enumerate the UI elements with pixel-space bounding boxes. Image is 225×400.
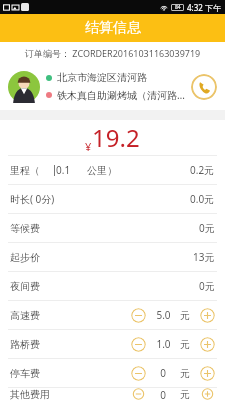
staticText: 结算信息 <box>85 19 141 37</box>
staticText: 0 <box>160 366 166 380</box>
button[interactable]: 起步价 <box>0 243 225 271</box>
staticText: 里程（ <box>10 164 40 177</box>
staticText: 公里） <box>87 164 117 177</box>
button[interactable]: Increase <box>200 308 215 323</box>
staticText: 北京市海淀区清河路 <box>57 71 147 84</box>
staticText: 0.1 <box>56 163 71 177</box>
staticText: 0.0元 <box>190 192 215 206</box>
staticText: 13元 <box>193 250 215 264</box>
button[interactable]: Decrease <box>131 388 146 400</box>
staticText: 其他费用 <box>10 388 50 400</box>
staticText: 高速费 <box>10 309 40 322</box>
staticText: 元 <box>180 309 190 322</box>
button[interactable]: Increase <box>200 366 215 381</box>
button[interactable]: Increase <box>200 388 215 400</box>
staticText: 停车费 <box>10 367 40 380</box>
staticText: 0元 <box>199 221 215 235</box>
staticText: 5.0 <box>156 308 171 322</box>
staticText: 元 <box>180 338 190 351</box>
staticText: 84 <box>175 4 181 11</box>
staticText: 元 <box>180 388 190 400</box>
button[interactable]: 里程（ <box>0 156 225 184</box>
staticText: 起步价 <box>10 251 40 264</box>
button[interactable]: Call <box>191 74 217 100</box>
button[interactable]: 北京市海淀区清河路 <box>0 63 225 110</box>
button[interactable]: Decrease <box>131 337 146 352</box>
button[interactable]: Decrease <box>131 308 146 323</box>
button[interactable]: 时长( 0分) <box>0 185 225 213</box>
staticText: 0.2元 <box>190 163 215 177</box>
staticText: 路桥费 <box>10 338 40 351</box>
staticText: 时长( 0分) <box>10 192 55 206</box>
staticText: 0 <box>160 388 166 400</box>
staticText: 元 <box>180 367 190 380</box>
button[interactable]: Increase <box>200 337 215 352</box>
button[interactable]: Decrease <box>131 366 146 381</box>
staticText: 夜间费 <box>10 280 40 293</box>
button[interactable]: 夜间费 <box>0 272 225 300</box>
staticText: 4:32 下午 <box>187 2 221 13</box>
staticText: ¥ <box>85 139 92 154</box>
staticText: 19.2 <box>92 121 140 154</box>
staticText: 0元 <box>199 279 215 293</box>
staticText: 铁木真自助涮烤城（清河路… <box>57 88 185 102</box>
button[interactable]: 等候费 <box>0 214 225 242</box>
staticText: 订单编号： ZCORDER20161031163039719 <box>25 47 201 59</box>
button[interactable]: 结算信息 <box>0 14 225 42</box>
staticText: 等候费 <box>10 222 40 235</box>
staticText: 1.0 <box>156 337 171 351</box>
